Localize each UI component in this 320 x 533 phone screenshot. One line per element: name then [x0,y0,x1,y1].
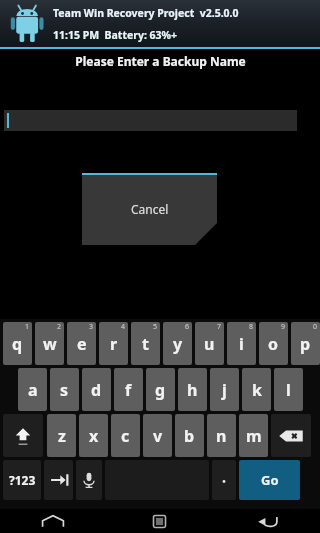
button[interactable]: p [291,322,320,365]
staticText: 4 [121,322,126,332]
staticText: v [153,425,163,447]
button[interactable]: g [146,368,175,411]
button[interactable]: Recent apps [106,509,213,533]
staticText: g [155,379,166,401]
staticText: h [187,379,198,401]
button[interactable]: n [207,414,236,457]
button[interactable]: Back [213,509,320,533]
button[interactable]: y [163,322,192,365]
staticText: i [239,333,244,355]
button[interactable]: j [210,368,239,411]
staticText: Please Enter a Backup Name [75,53,246,69]
staticText: w [43,333,57,355]
staticText: z [58,425,66,447]
staticText: 11:15 PM Battery: 63%+ [53,28,178,42]
button[interactable]: r [99,322,128,365]
staticText: 8 [249,322,254,332]
staticText: b [184,425,195,447]
staticText: f [125,379,132,401]
button[interactable]: w [35,322,64,365]
button[interactable]: k [242,368,271,411]
button[interactable]: d [82,368,111,411]
button[interactable]: m [239,414,268,457]
staticText: o [268,333,279,355]
staticText: 5 [153,322,158,332]
staticText: j [222,379,227,401]
staticText: u [204,333,215,355]
staticText: s [60,379,69,401]
button[interactable]: Backspace [271,414,311,457]
button[interactable]: Cancel [82,173,217,245]
button[interactable]: b [175,414,204,457]
button[interactable]: t [131,322,160,365]
button[interactable]: u [195,322,224,365]
button[interactable]: Voice input [76,460,102,500]
button[interactable]: x [79,414,108,457]
staticText: 7 [217,322,222,332]
staticText: y [173,333,183,355]
staticText: e [77,333,87,355]
button[interactable]: i [227,322,256,365]
button[interactable]: c [111,414,140,457]
button[interactable]: f [114,368,143,411]
staticText: c [121,425,130,447]
staticText: d [91,379,102,401]
button[interactable]: Shift [3,414,43,457]
button[interactable]: ?123 [3,460,41,500]
button[interactable]: v [143,414,172,457]
staticText: m [246,425,262,447]
staticText: x [89,425,99,447]
button[interactable] [4,110,297,131]
staticText: p [300,333,311,355]
staticText: 9 [281,322,286,332]
staticText: 3 [89,322,94,332]
staticText: r [110,333,118,355]
button[interactable]: l [274,368,303,411]
button[interactable]: h [178,368,207,411]
button[interactable]: Period [212,460,236,500]
staticText: 1 [25,322,30,332]
button[interactable]: s [50,368,79,411]
staticText: l [286,379,291,401]
staticText: Cancel [131,201,169,217]
button[interactable]: Go [239,460,300,500]
staticText: 6 [185,322,190,332]
button[interactable]: o [259,322,288,365]
button[interactable]: Tab [44,460,73,500]
button[interactable]: e [67,322,96,365]
button[interactable]: z [47,414,76,457]
staticText: Go [261,471,279,489]
staticText: 0 [313,322,318,332]
staticText: n [216,425,227,447]
staticText: q [12,333,23,355]
button[interactable]: a [18,368,47,411]
staticText: t [142,333,149,355]
staticText: 2 [57,322,62,332]
staticText: a [28,379,38,401]
staticText: ?123 [9,472,36,488]
staticText: k [252,379,262,401]
button[interactable]: q [3,322,32,365]
staticText: Team Win Recovery Project v2.5.0.0 [53,6,239,20]
button[interactable]: Home [0,509,106,533]
